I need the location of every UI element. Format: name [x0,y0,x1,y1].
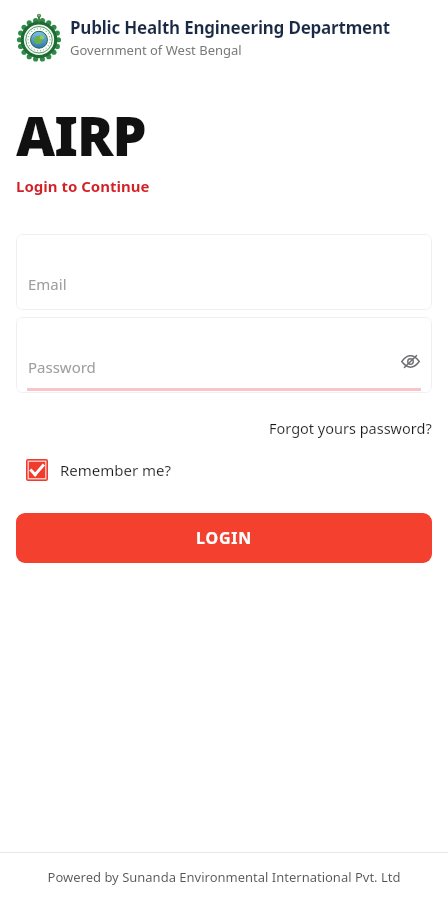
button[interactable]: Email [16,234,432,310]
staticText: Login to Continue [16,176,150,196]
staticText: Public Health Engineering Department [70,16,391,39]
button[interactable]: Password [16,317,432,393]
staticText: Forgot yours password? [269,418,432,438]
staticText: Email [28,274,67,294]
staticText: Remember me? [60,460,172,480]
staticText: LOGIN [196,527,253,549]
button[interactable]: Show password [396,347,424,375]
staticText: Government of West Bengal [70,41,242,59]
staticText: AIRP [16,98,146,172]
staticText: Powered by Sunanda Environmental Interna… [0,868,448,886]
button[interactable]: LOGIN [16,513,432,563]
button[interactable]: Remember me? [20,455,178,485]
staticText: Password [28,357,96,377]
button[interactable]: Forgot yours password? [267,415,434,441]
